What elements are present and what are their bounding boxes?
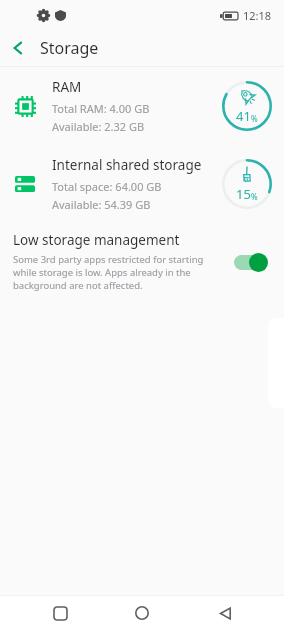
staticText: % (251, 191, 258, 202)
staticText: Internal shared storage (52, 156, 202, 174)
button[interactable]: Internal shared storage (0, 145, 284, 223)
staticText: RAM (52, 78, 82, 96)
button[interactable]: RAM (0, 67, 284, 145)
staticText: Total RAM: 4.00 GB (52, 101, 150, 116)
staticText: 12:18 (243, 8, 272, 23)
staticText: % (251, 113, 258, 124)
button[interactable]: Low storage management (0, 223, 284, 302)
staticText: Total space: 64.00 GB (52, 179, 162, 194)
button[interactable]: Recents (37, 596, 83, 630)
button[interactable]: Back (202, 596, 248, 630)
button[interactable]: Home (119, 596, 165, 630)
staticText: Available: 54.39 GB (52, 197, 151, 212)
staticText: 41 (236, 107, 251, 125)
staticText: Low storage management (13, 231, 180, 249)
staticText: 15 (236, 185, 251, 203)
staticText: Some 3rd party apps restricted for start… (13, 253, 222, 292)
button[interactable]: Low storage management toggle (232, 251, 270, 273)
button[interactable]: Back (0, 30, 36, 66)
staticText: Available: 2.32 GB (52, 119, 145, 134)
staticText: Storage (40, 37, 99, 59)
